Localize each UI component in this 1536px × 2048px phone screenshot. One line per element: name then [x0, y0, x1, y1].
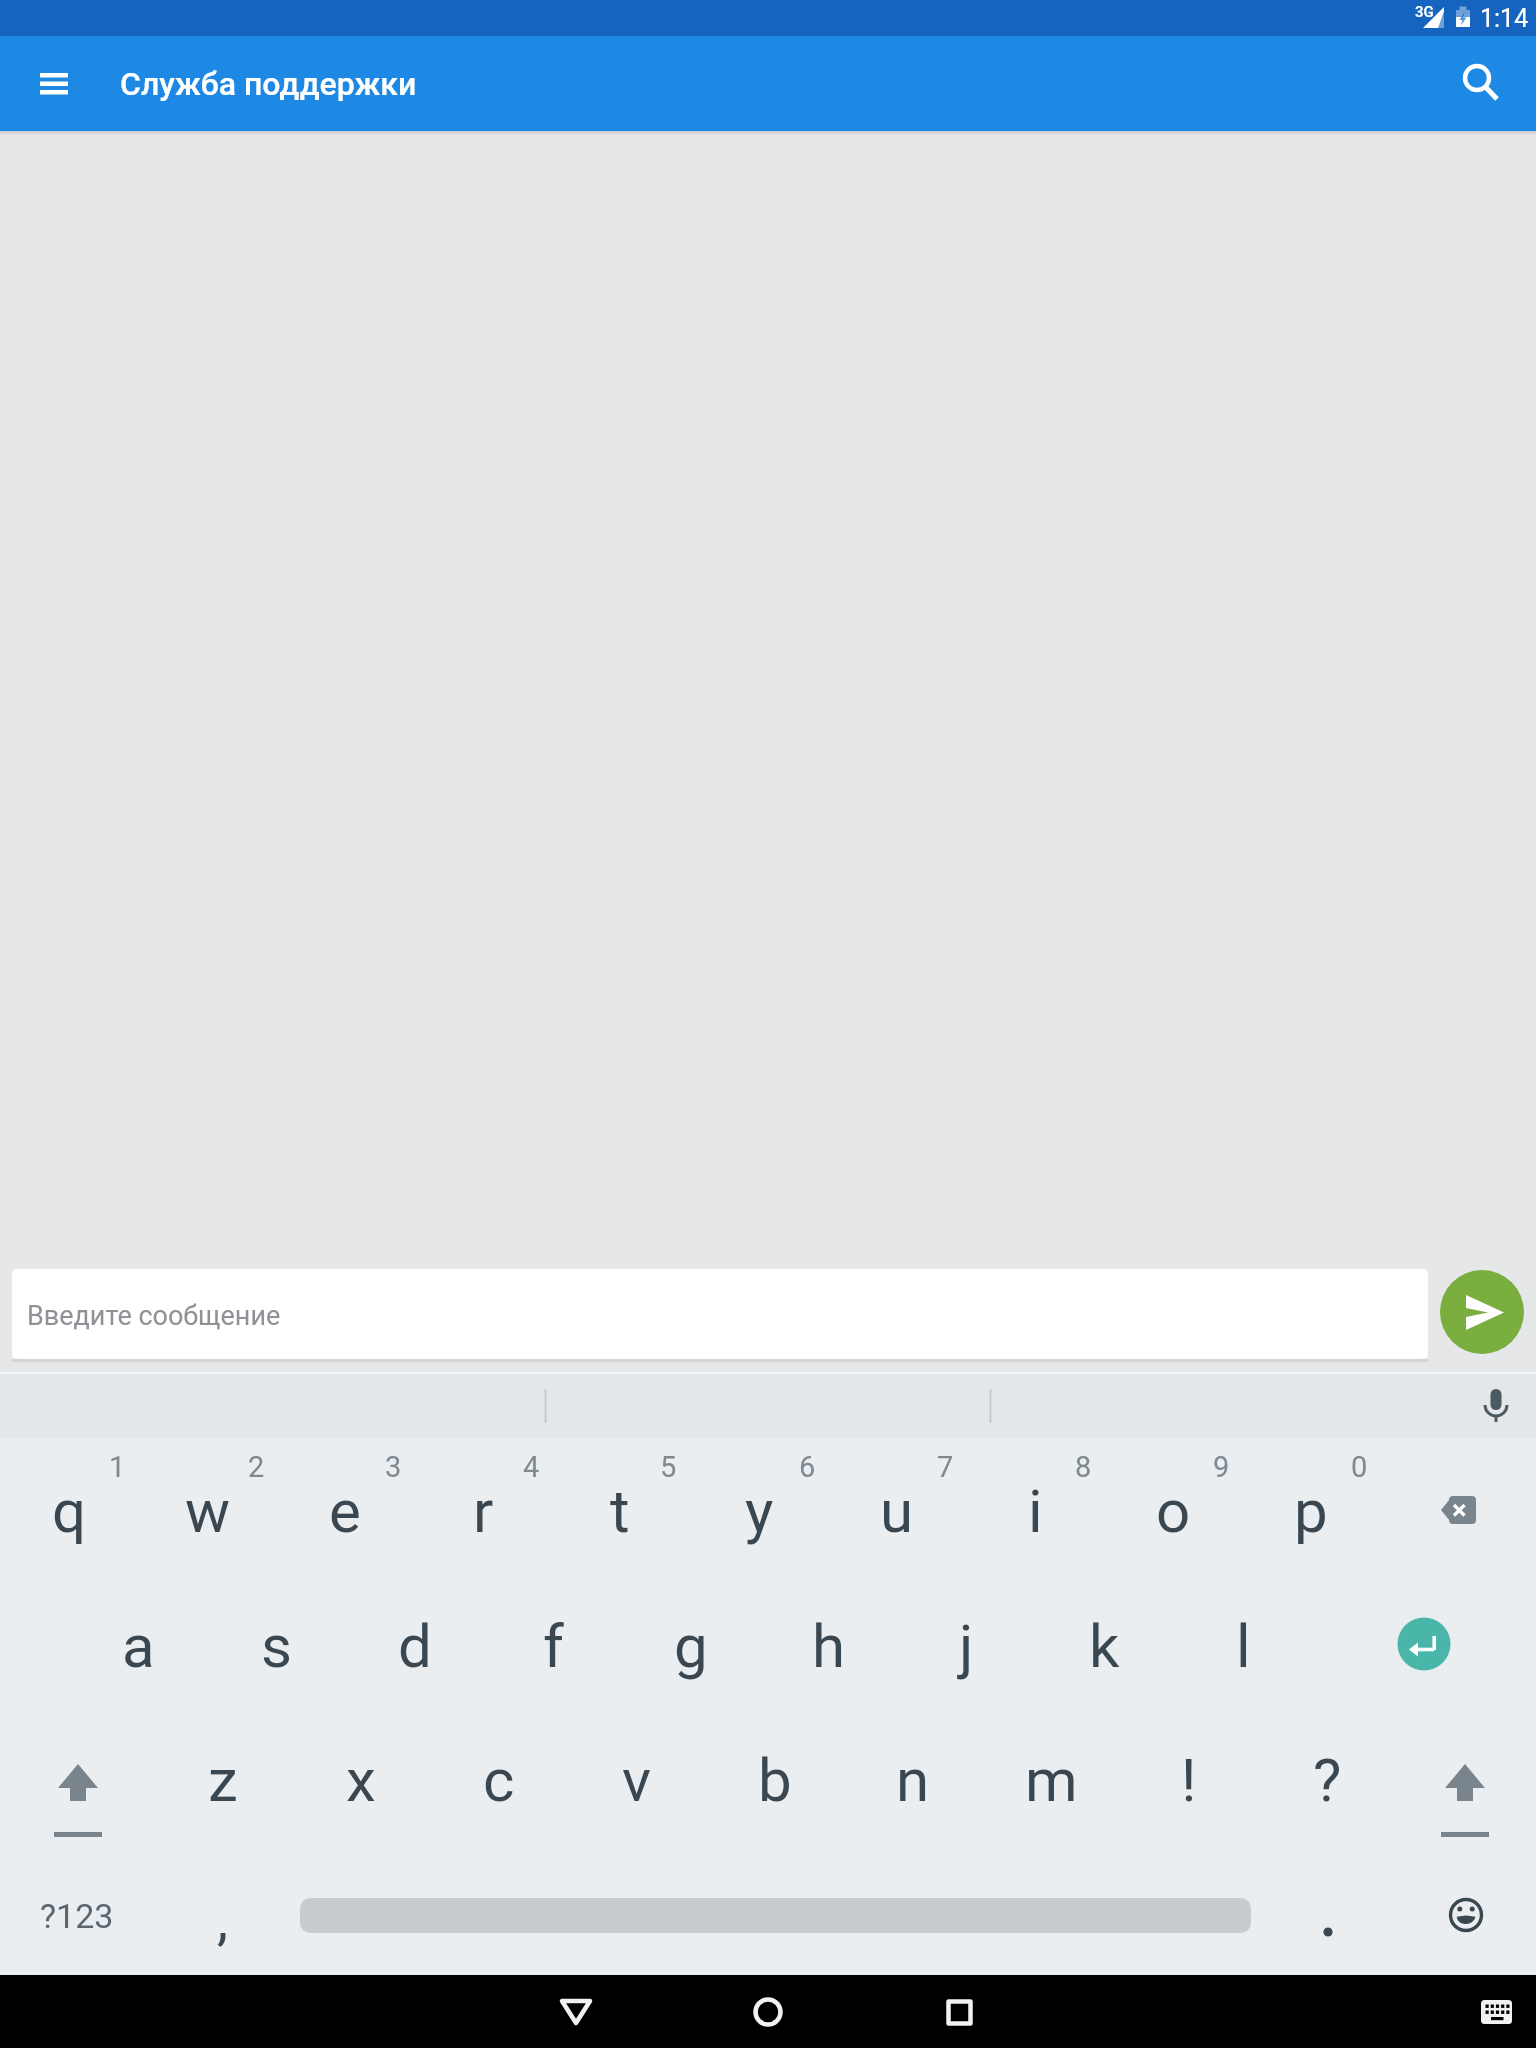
staticText: r — [473, 1476, 494, 1546]
button[interactable]: f — [488, 1586, 618, 1706]
staticText: 3 — [385, 1450, 402, 1484]
button[interactable]: d — [350, 1586, 480, 1706]
staticText: q — [52, 1476, 87, 1546]
staticText: 0 — [1351, 1450, 1368, 1484]
button[interactable] — [738, 1982, 798, 2042]
staticText: o — [1156, 1476, 1191, 1546]
staticText: ? — [1313, 1745, 1342, 1815]
button[interactable] — [30, 1718, 126, 1838]
button[interactable]: v — [572, 1720, 702, 1840]
staticText: a — [122, 1611, 155, 1681]
staticText: f — [543, 1611, 564, 1681]
button[interactable]: k — [1039, 1586, 1169, 1706]
button[interactable]: r — [418, 1451, 548, 1571]
staticText: i — [1028, 1476, 1043, 1546]
staticText: 8 — [1075, 1450, 1092, 1484]
button[interactable]: t — [555, 1451, 685, 1571]
staticText: d — [398, 1611, 432, 1681]
button[interactable]: q — [4, 1451, 134, 1571]
button[interactable]: e — [280, 1451, 410, 1571]
button[interactable]: ! — [1124, 1720, 1254, 1840]
staticText: x — [346, 1745, 376, 1815]
staticText: 1 — [109, 1450, 126, 1484]
staticText: c — [483, 1745, 515, 1815]
button[interactable]: y — [694, 1451, 824, 1571]
button[interactable]: j — [901, 1586, 1031, 1706]
button[interactable] — [929, 1982, 989, 2042]
button[interactable]: o — [1108, 1451, 1238, 1571]
button[interactable]: m — [986, 1720, 1116, 1840]
button[interactable]: w — [143, 1451, 273, 1571]
staticText: 7 — [937, 1450, 954, 1484]
button[interactable]: a — [73, 1586, 203, 1706]
button[interactable]: , — [158, 1860, 288, 1980]
staticText: z — [208, 1745, 238, 1815]
button[interactable] — [1467, 1982, 1527, 2042]
button[interactable] — [1466, 1376, 1526, 1434]
staticText: 5 — [660, 1450, 677, 1484]
staticText: 6 — [799, 1450, 816, 1484]
button[interactable]: c — [434, 1720, 564, 1840]
button[interactable] — [1418, 1856, 1514, 1968]
staticText: h — [812, 1611, 846, 1681]
staticText: v — [622, 1745, 652, 1815]
button[interactable] — [1449, 50, 1505, 106]
staticText: t — [610, 1476, 630, 1546]
button[interactable] — [1417, 1718, 1513, 1838]
button[interactable]: x — [296, 1720, 426, 1840]
staticText: 3G — [1415, 3, 1434, 21]
button[interactable]: ?123 — [22, 1856, 132, 1976]
button[interactable]: Введите сообщение — [12, 1269, 1428, 1359]
button[interactable]: i — [970, 1451, 1100, 1571]
staticText: w — [185, 1476, 231, 1546]
staticText: , — [217, 1887, 229, 1953]
staticText: y — [745, 1476, 774, 1546]
staticText: Введите сообщение — [27, 1300, 281, 1332]
button[interactable] — [546, 1982, 606, 2042]
staticText: j — [959, 1611, 974, 1681]
button[interactable]: z — [158, 1720, 288, 1840]
staticText: l — [1236, 1611, 1251, 1681]
button[interactable]: g — [626, 1586, 756, 1706]
staticText: k — [1089, 1611, 1120, 1681]
staticText: g — [674, 1611, 708, 1681]
staticText: 2 — [248, 1450, 265, 1484]
button[interactable] — [1376, 1584, 1472, 1704]
button[interactable]: h — [764, 1586, 894, 1706]
staticText: 4 — [523, 1450, 540, 1484]
staticText: 9 — [1213, 1450, 1230, 1484]
button[interactable]: ? — [1262, 1720, 1392, 1840]
staticText: p — [1294, 1476, 1328, 1546]
button[interactable]: n — [848, 1720, 978, 1840]
staticText: b — [758, 1745, 792, 1815]
button[interactable] — [1410, 1450, 1506, 1570]
staticText: 1:14 — [1480, 4, 1529, 33]
staticText: m — [1025, 1745, 1078, 1815]
staticText: u — [880, 1476, 914, 1546]
button[interactable]: b — [710, 1720, 840, 1840]
staticText: Служба поддержки — [120, 65, 417, 103]
staticText: n — [896, 1745, 930, 1815]
staticText: e — [329, 1476, 361, 1546]
button[interactable]: p — [1246, 1451, 1376, 1571]
button[interactable] — [1440, 1270, 1524, 1354]
staticText: ! — [1181, 1745, 1197, 1815]
button[interactable]: s — [211, 1586, 341, 1706]
button[interactable] — [1280, 1856, 1376, 1968]
button[interactable] — [26, 56, 82, 112]
staticText: ?123 — [40, 1896, 114, 1936]
button[interactable]: u — [832, 1451, 962, 1571]
staticText: s — [261, 1611, 292, 1681]
button[interactable]: l — [1178, 1586, 1308, 1706]
